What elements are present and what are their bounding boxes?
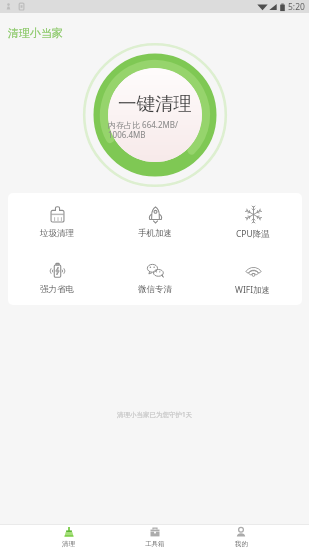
staticText: 清理小当家 (8, 26, 63, 40)
staticText: 内存占比 664.2MB/1006.4MB (108, 119, 202, 141)
button[interactable]: CPU降温 (204, 206, 302, 240)
staticText: 清理小当家已为您守护1天 (0, 410, 309, 419)
staticText: 工具箱 (145, 540, 165, 548)
staticText: WIFI加速 (235, 284, 271, 296)
button[interactable]: 清理 (25, 525, 112, 550)
staticText: 微信专清 (138, 284, 172, 295)
staticText: 5:20 (288, 1, 305, 13)
staticText: 手机加速 (138, 228, 172, 239)
staticText: 一键清理 (108, 92, 202, 115)
staticText: 垃圾清理 (40, 228, 74, 239)
staticText: 强力省电 (40, 284, 74, 295)
button[interactable]: 一键清理 (84, 44, 226, 186)
button[interactable]: 工具箱 (112, 525, 198, 550)
button[interactable]: WIFI加速 (204, 262, 302, 296)
staticText: 清理 (62, 540, 75, 548)
button[interactable]: 我的 (198, 525, 284, 550)
staticText: CPU降温 (236, 228, 270, 240)
button[interactable]: 微信专清 (106, 262, 204, 295)
button[interactable]: 垃圾清理 (8, 206, 106, 239)
button[interactable]: 手机加速 (106, 206, 204, 239)
button[interactable]: 强力省电 (8, 262, 106, 295)
staticText: 我的 (235, 540, 248, 548)
